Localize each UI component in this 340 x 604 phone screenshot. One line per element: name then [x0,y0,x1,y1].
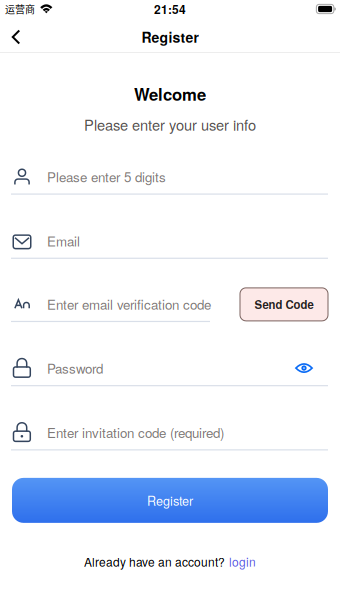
button[interactable]: Register [12,478,328,523]
staticText: Enter email verification code [47,294,211,313]
staticText: 21:54 [154,0,186,18]
button[interactable]: Back [0,22,32,52]
button[interactable]: login [225,553,256,570]
staticText: Password [47,358,103,378]
staticText: 运营商 [5,2,35,16]
staticText: Enter invitation code (required) [47,423,224,442]
staticText: login [229,553,256,570]
staticText: Send Code [254,296,313,312]
button[interactable]: Send Code [240,287,328,320]
staticText: Please enter 5 digits [47,167,166,186]
staticText: Register [141,27,198,47]
staticText: Register [147,491,193,509]
staticText: Already have an account? [84,553,225,570]
staticText: Welcome [134,82,206,106]
button[interactable]: Show password [291,354,328,382]
staticText: Please enter your user info [84,114,256,135]
staticText: Email [47,231,80,250]
